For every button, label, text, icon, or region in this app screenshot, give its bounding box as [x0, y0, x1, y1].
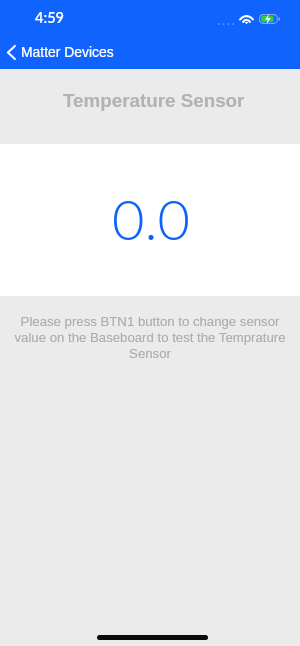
button[interactable]: Back	[0, 39, 124, 65]
staticText: Temperature Sensor	[63, 90, 245, 111]
other: Back	[7, 45, 16, 60]
staticText: 4:59	[35, 9, 65, 27]
other: Cellular signal	[218, 22, 234, 26]
staticText: 0.0	[112, 185, 191, 252]
staticText: Matter Devices	[21, 44, 114, 60]
staticText: Please press BTN1 button to change senso…	[13, 314, 287, 361]
